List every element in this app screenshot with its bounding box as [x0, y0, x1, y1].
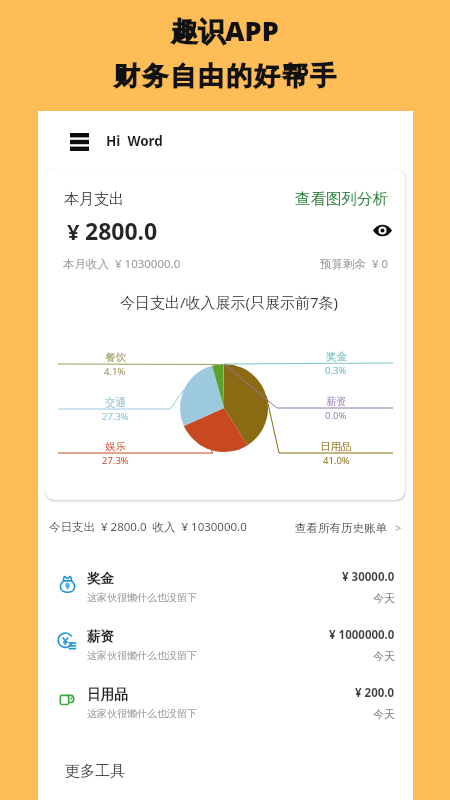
- button[interactable]: 薪资: [38, 616, 413, 674]
- button[interactable]: 查看所有历史账单: [295, 520, 402, 535]
- staticText: 薪资: [326, 395, 347, 408]
- staticText: 日用品: [87, 686, 128, 703]
- staticText: 这家伙很懒什么也没留下: [87, 591, 197, 604]
- staticText: 今天: [373, 707, 395, 721]
- staticText: 2800.0: [85, 215, 158, 246]
- staticText: 薪资: [87, 628, 114, 645]
- staticText: 查看所有历史账单: [295, 521, 387, 535]
- button[interactable]: 奖金: [38, 558, 413, 616]
- staticText: 这家伙很懒什么也没留下: [87, 649, 197, 662]
- staticText: 今天: [373, 591, 395, 605]
- staticText: 这家伙很懒什么也没留下: [87, 707, 197, 720]
- staticText: 0.3%: [325, 364, 347, 377]
- staticText: 本月支出: [64, 190, 124, 209]
- staticText: 趣识APP: [171, 12, 279, 49]
- staticText: Hi Word: [106, 132, 163, 150]
- staticText: 今日支出/收入展示(只展示前7条): [49, 292, 405, 312]
- staticText: ¥ 30000.0: [342, 569, 395, 585]
- staticText: 本月收入 ¥ 1030000.0: [63, 256, 181, 272]
- button[interactable]: 查看图列分析: [295, 189, 388, 209]
- button[interactable]: Toggle amount visibility: [371, 219, 393, 241]
- button[interactable]: Menu: [62, 124, 97, 159]
- staticText: 0.0%: [325, 409, 347, 422]
- staticText: 娱乐: [105, 440, 126, 453]
- staticText: 今天: [373, 649, 395, 663]
- staticText: 更多工具: [65, 762, 125, 781]
- staticText: 预算剩余 ¥ 0: [320, 256, 389, 272]
- staticText: 41.0%: [323, 454, 350, 467]
- staticText: ¥: [67, 216, 80, 246]
- staticText: 财务自由的好帮手: [113, 60, 337, 93]
- staticText: 27.3%: [102, 454, 129, 467]
- staticText: 奖金: [87, 570, 114, 587]
- staticText: 查看图列分析: [295, 189, 388, 209]
- staticText: 今日支出 ¥ 2800.0 收入 ¥ 1030000.0: [49, 519, 247, 535]
- staticText: 餐饮: [105, 351, 126, 364]
- staticText: ¥ 1000000.0: [329, 627, 395, 643]
- staticText: ¥ 200.0: [355, 685, 395, 701]
- staticText: 奖金: [326, 350, 347, 363]
- staticText: >: [395, 520, 402, 535]
- staticText: 4.1%: [104, 365, 126, 378]
- staticText: 日用品: [320, 440, 352, 453]
- staticText: 27.3%: [102, 410, 129, 423]
- button[interactable]: 日用品: [38, 674, 413, 732]
- staticText: 交通: [105, 396, 126, 409]
